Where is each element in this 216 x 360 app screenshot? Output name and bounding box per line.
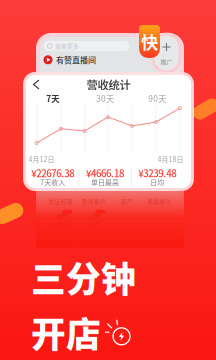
staticText: 三分钟 xyxy=(31,252,136,302)
button[interactable]: 90天 xyxy=(131,95,183,102)
staticText: 营收统计 xyxy=(86,76,130,93)
staticText: 验证核销 xyxy=(48,197,72,205)
staticText: 7天 xyxy=(46,92,59,104)
button[interactable]: 30天 xyxy=(79,95,131,102)
staticText: ¥3239.48 xyxy=(138,166,176,180)
staticText: 开店 xyxy=(31,307,101,357)
staticText: 4月18日 xyxy=(157,154,183,164)
staticText: 有赞直播间 xyxy=(56,54,96,66)
staticText: 数据统计 xyxy=(147,197,171,205)
staticText: 搜索更多 xyxy=(55,42,79,50)
staticText: 资产 xyxy=(120,197,132,205)
staticText: ¥22676.38 xyxy=(31,166,74,180)
button[interactable]: 返回 xyxy=(28,75,44,94)
staticText: 30天 xyxy=(96,92,114,104)
staticText: 日均 xyxy=(150,177,164,187)
staticText: 7天收入 xyxy=(40,177,65,187)
staticText: 4月12日 xyxy=(28,154,54,164)
staticText: 查询客户 xyxy=(81,197,105,205)
staticText: ¥4666.18 xyxy=(86,166,124,180)
staticText: 推广 xyxy=(160,57,172,66)
staticText: 90天 xyxy=(148,92,166,104)
button[interactable]: 7天 xyxy=(26,95,79,102)
staticText: 单日最高 xyxy=(91,177,119,187)
staticText: 快 xyxy=(141,29,158,54)
